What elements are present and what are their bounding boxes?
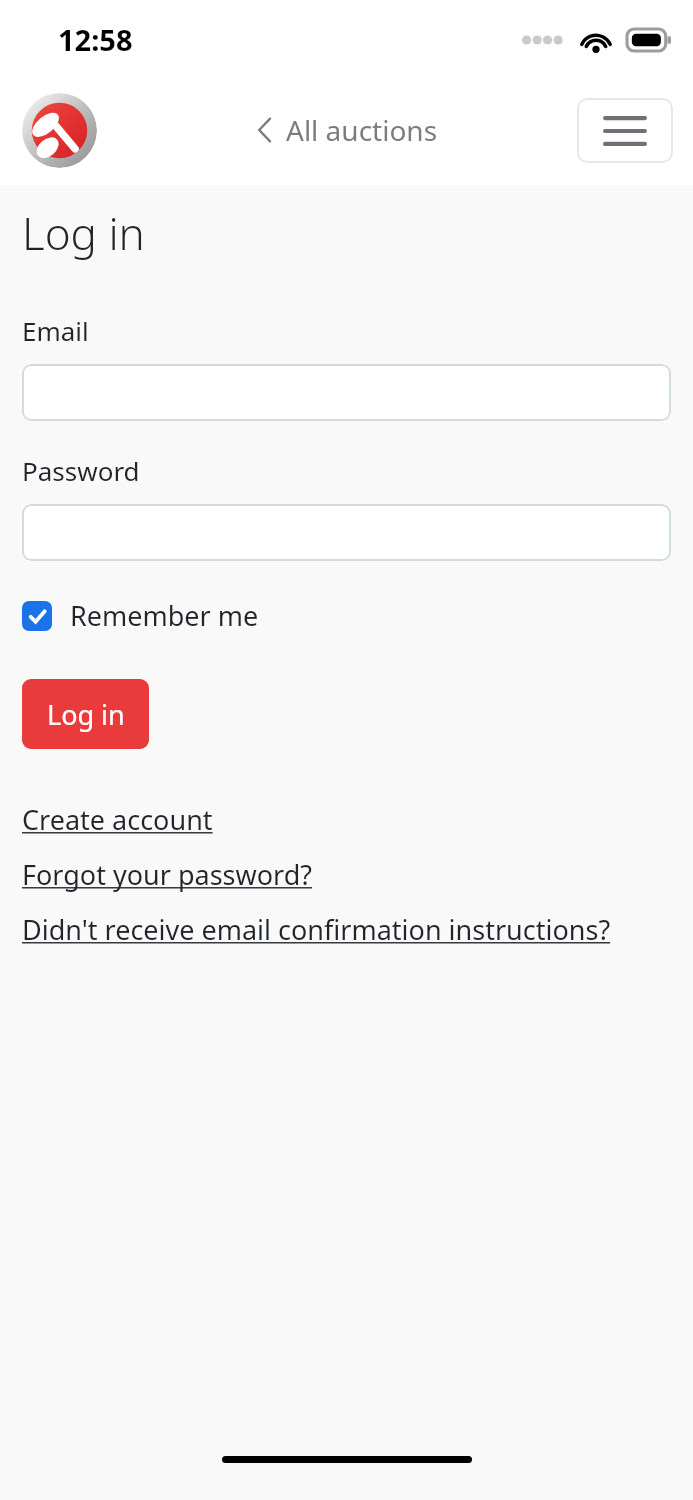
button[interactable]: Text input xyxy=(22,364,671,421)
button[interactable]: Menu xyxy=(577,98,673,163)
staticText: Forgot your password? xyxy=(22,856,313,893)
staticText: Remember me xyxy=(70,597,259,634)
button[interactable]: Didn't receive email confirmation instru… xyxy=(22,911,611,948)
staticText: Log in xyxy=(47,696,125,733)
button[interactable]: All auctions xyxy=(256,111,438,149)
button[interactable]: Create account xyxy=(22,801,213,838)
staticText: Log in xyxy=(22,203,145,263)
button[interactable]: Remember me xyxy=(22,597,259,634)
staticText: Email xyxy=(22,313,89,348)
button[interactable]: Forgot your password? xyxy=(22,856,313,893)
staticText: 12:58 xyxy=(58,20,133,59)
staticText: Create account xyxy=(22,801,213,838)
button[interactable]: Home xyxy=(22,93,97,168)
button[interactable]: Text input xyxy=(22,504,671,561)
button[interactable]: Log in xyxy=(22,679,149,749)
staticText: Didn't receive email confirmation instru… xyxy=(22,911,611,948)
staticText: Password xyxy=(22,453,140,488)
staticText: All auctions xyxy=(286,111,438,149)
